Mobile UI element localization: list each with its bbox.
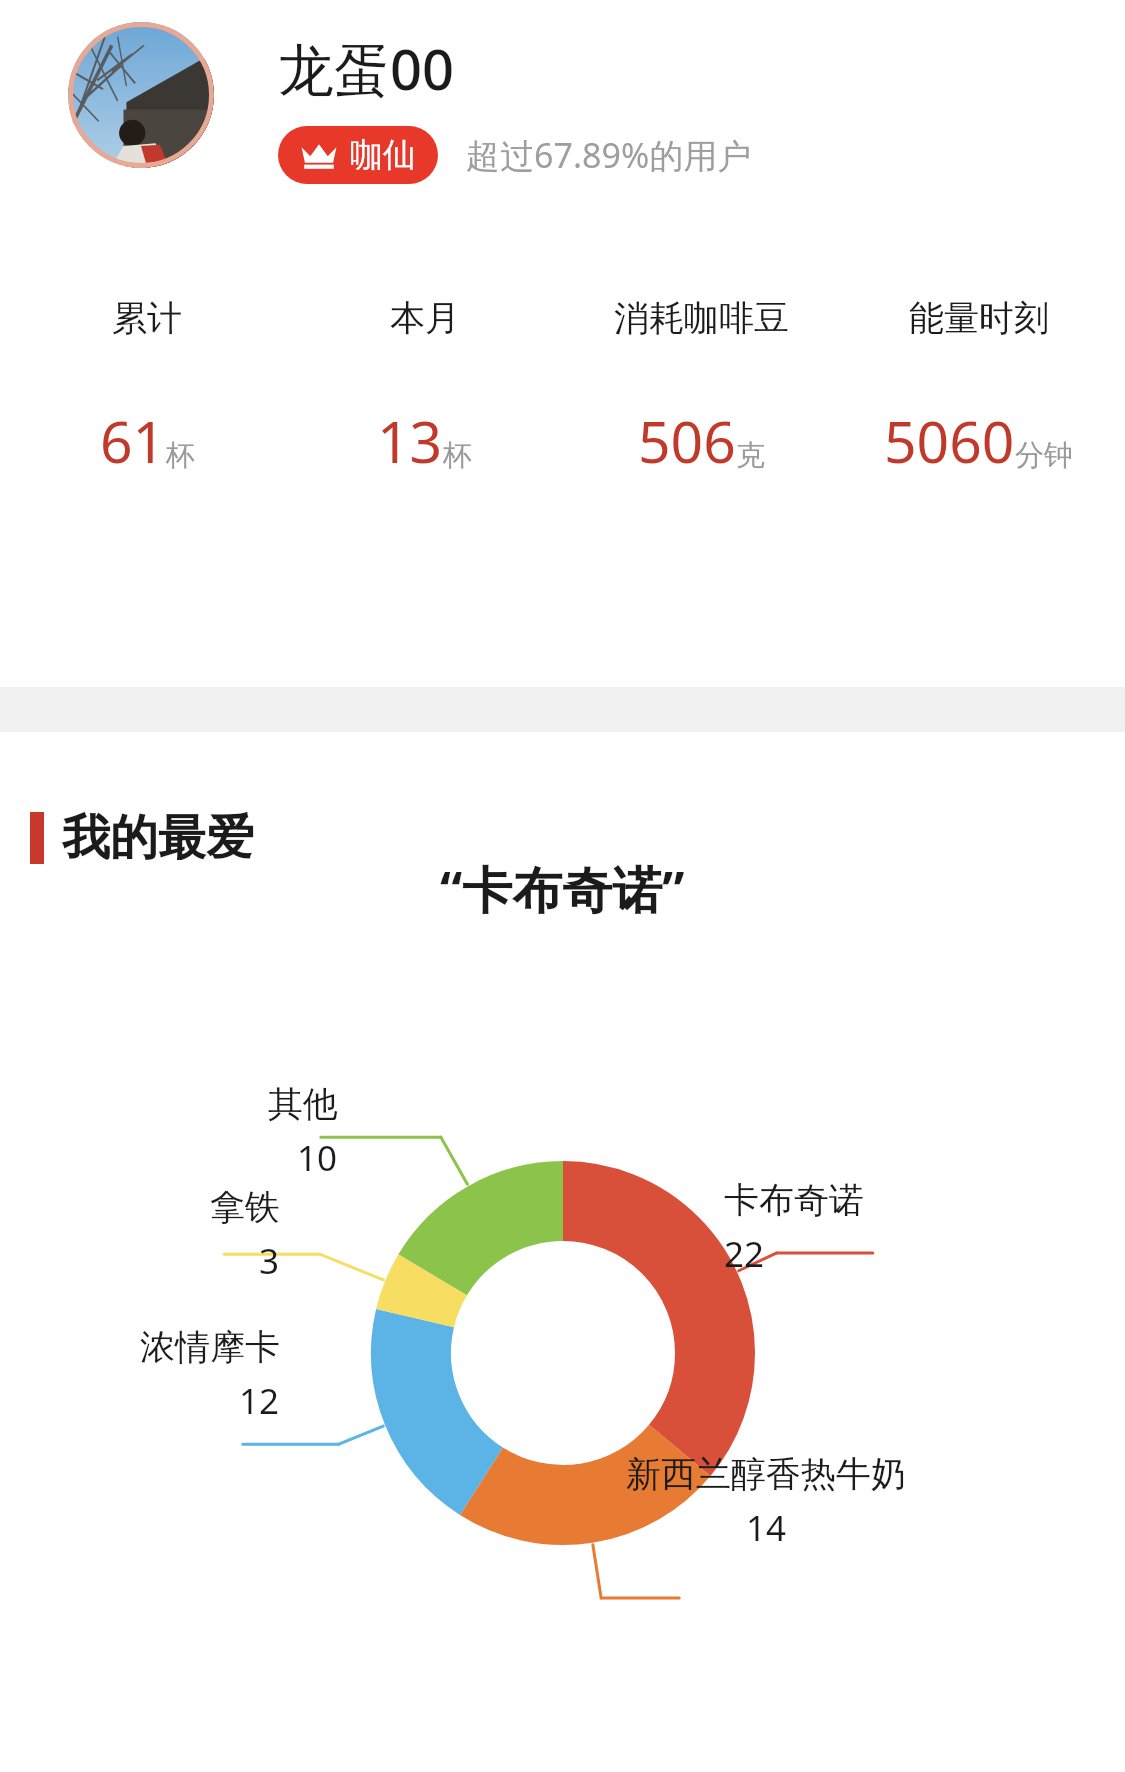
button[interactable]: 累计	[8, 296, 286, 480]
staticText: 咖仙	[350, 134, 416, 176]
staticText: 能量时刻	[909, 296, 1049, 340]
staticText: 其他	[268, 1082, 338, 1126]
button[interactable]: 卡布奇诺	[724, 1178, 864, 1278]
staticText: 3	[259, 1237, 280, 1285]
staticText: 克	[736, 437, 765, 474]
button[interactable]: 我的最爱	[0, 808, 1125, 868]
button[interactable]: Profile photo	[68, 22, 214, 168]
staticText: 消耗咖啡豆	[614, 296, 789, 340]
staticText: 龙蛋00	[278, 30, 455, 106]
button[interactable]: 拿铁	[204, 1185, 280, 1285]
button[interactable]: 咖仙	[278, 126, 438, 184]
button[interactable]: 消耗咖啡豆	[563, 296, 840, 480]
staticText: 本月	[390, 296, 460, 340]
button[interactable]: 能量时刻	[840, 296, 1117, 480]
staticText: 10	[297, 1134, 338, 1182]
button[interactable]: 本月	[286, 296, 563, 480]
staticText: 61	[100, 402, 166, 480]
button[interactable]: 浓情摩卡	[138, 1325, 280, 1425]
staticText: 14	[746, 1504, 787, 1552]
staticText: 分钟	[1015, 437, 1073, 474]
staticText: 506	[638, 402, 736, 480]
staticText: 拿铁	[210, 1185, 280, 1229]
staticText: 累计	[112, 296, 182, 340]
staticText: 22	[724, 1230, 765, 1278]
staticText: 5060	[884, 402, 1015, 480]
staticText: 杯	[166, 437, 195, 474]
button[interactable]: 新西兰醇香热牛奶	[624, 1452, 908, 1552]
staticText: 浓情摩卡	[140, 1325, 280, 1369]
button[interactable]: 其他	[262, 1082, 338, 1182]
staticText: 卡布奇诺	[724, 1178, 864, 1222]
staticText: 超过67.89%的用户	[466, 132, 752, 178]
staticText: 13	[377, 402, 443, 480]
staticText: 12	[239, 1377, 280, 1425]
staticText: 杯	[443, 437, 472, 474]
staticText: “卡布奇诺”	[440, 855, 685, 923]
staticText: 我的最爱	[62, 808, 254, 868]
staticText: 新西兰醇香热牛奶	[626, 1452, 906, 1496]
